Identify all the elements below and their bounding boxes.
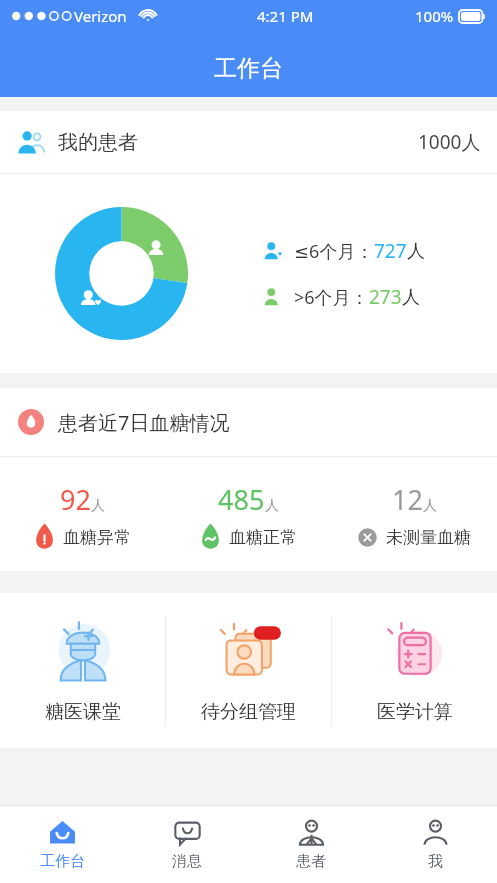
button[interactable]: 485 [165, 457, 331, 571]
staticText: ≤6个月： [294, 239, 374, 264]
button[interactable]: 12 [331, 457, 497, 571]
staticText: Verizon [74, 6, 127, 26]
button[interactable]: 92 [0, 457, 165, 571]
staticText: 100% [415, 6, 454, 26]
staticText: 工作台 [40, 852, 85, 871]
staticText: 待分组管理 [201, 700, 296, 724]
staticText: 727 [374, 238, 407, 264]
staticText: 4:21 PM [257, 6, 314, 26]
staticText: 工作台 [214, 54, 283, 83]
staticText: 人 [265, 497, 279, 515]
staticText: 患者 [296, 852, 326, 871]
staticText: 我的患者 [58, 130, 138, 155]
staticText: 血糖正常 [229, 527, 297, 548]
staticText: 未测量血糖 [386, 527, 471, 548]
button[interactable]: 患者 [249, 806, 373, 883]
staticText: 消息 [172, 852, 202, 871]
button[interactable]: 消息 [125, 806, 249, 883]
staticText: 485 [218, 481, 265, 518]
staticText: 人 [402, 286, 420, 309]
staticText: 92 [60, 481, 91, 518]
staticText: 血糖异常 [63, 527, 131, 548]
staticText: 人 [423, 497, 437, 515]
button[interactable]: 患者近7日血糖情况 [0, 388, 497, 456]
button[interactable]: 糖医课堂 [0, 593, 165, 748]
staticText: 医学计算 [377, 700, 453, 724]
staticText: 我 [428, 852, 443, 871]
button[interactable]: 工作台 [0, 806, 125, 883]
button[interactable]: 医学计算 [332, 593, 497, 748]
button[interactable]: 我的患者 [0, 111, 497, 173]
staticText: 273 [369, 284, 402, 310]
staticText: 人 [407, 240, 425, 263]
button[interactable]: 我 [373, 806, 497, 883]
staticText: >6个月： [294, 285, 369, 310]
staticText: 1000人 [418, 129, 481, 155]
button[interactable]: 待分组管理 [166, 593, 331, 748]
staticText: 糖医课堂 [45, 700, 121, 724]
staticText: 12 [392, 481, 423, 518]
staticText: 人 [91, 497, 105, 515]
staticText: 患者近7日血糖情况 [58, 409, 230, 436]
